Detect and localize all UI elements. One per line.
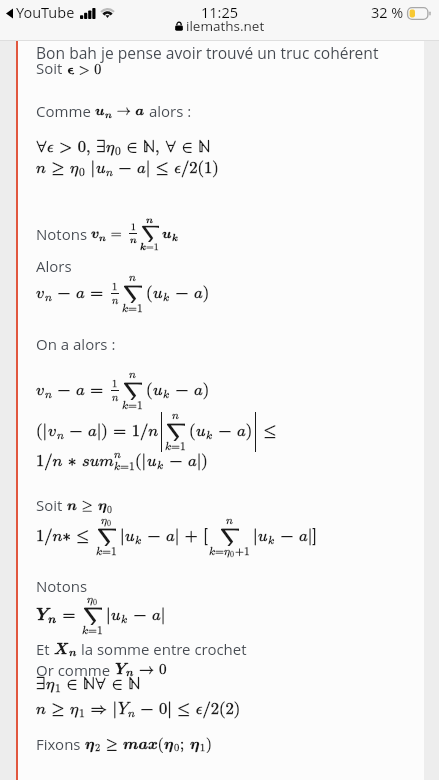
staticText: ∑: [166, 422, 185, 441]
staticText: 𝑛: [172, 410, 179, 422]
staticText: 𝑣: [36, 382, 45, 399]
staticText: =: [57, 607, 81, 624]
staticText: 1: [131, 222, 136, 232]
staticText: 𝒏: [130, 235, 137, 245]
staticText: (|: [135, 453, 147, 470]
button[interactable]: Back to YouTube: [6, 3, 115, 23]
staticText: ∑: [83, 606, 102, 625]
button[interactable]: ilemaths.net: [175, 17, 265, 35]
staticText: alors :: [145, 101, 192, 121]
staticText: 𝑘=1: [122, 303, 143, 315]
staticText: 1/𝑛 ∗: [36, 453, 82, 470]
staticText: 𝒌: [172, 233, 178, 243]
staticText: 𝑢: [111, 607, 121, 624]
staticText: On a alors :: [36, 334, 116, 354]
staticText: 0: [174, 743, 180, 754]
staticText: 11:25: [201, 3, 239, 23]
staticText: |: [85, 160, 96, 177]
staticText: 𝑣: [48, 423, 57, 440]
staticText: Notons: [36, 576, 88, 596]
staticText: 𝑛: [45, 292, 52, 304]
staticText: 𝜂: [101, 515, 107, 527]
staticText: Alors: [36, 256, 72, 276]
staticText: 𝜂: [87, 594, 93, 606]
staticText: 2: [95, 743, 101, 754]
staticText: 𝑛 ≥: [36, 160, 70, 177]
staticText: 𝜼: [164, 737, 174, 752]
staticText: 𝑛: [106, 167, 113, 179]
staticText: 𝑘=1: [82, 625, 103, 637]
staticText: 𝑢: [258, 528, 268, 545]
staticText: 32 %: [371, 3, 404, 23]
staticText: 𝑘: [157, 460, 164, 472]
staticText: ∑: [141, 225, 159, 242]
staticText: 𝒏: [126, 668, 134, 679]
staticText: 1: [112, 378, 118, 389]
staticText: − 𝑎 =: [52, 285, 109, 302]
staticText: 𝑛: [45, 389, 52, 401]
staticText: 𝑘: [163, 292, 170, 304]
staticText: 𝑛: [57, 430, 64, 442]
staticText: Soit: [36, 495, 67, 515]
staticText: =: [106, 227, 127, 241]
staticText: ≤: [258, 423, 277, 440]
staticText: |: [253, 528, 258, 545]
staticText: 𝑢: [153, 382, 163, 399]
staticText: 𝜼: [98, 499, 107, 513]
staticText: ;: [180, 737, 190, 752]
staticText: 𝑢: [147, 453, 157, 470]
staticText: 0: [93, 599, 98, 607]
staticText: 𝑛 ≥: [36, 701, 70, 718]
staticText: − 𝑎| + [: [142, 528, 208, 545]
staticText: 𝑢: [125, 528, 135, 545]
staticText: − 𝑎 =: [52, 382, 109, 399]
staticText: 1: [112, 281, 118, 292]
staticText: 0: [107, 520, 112, 528]
staticText: 𝑿: [54, 642, 69, 657]
staticText: 𝑘: [135, 535, 142, 547]
staticText: 𝑛: [112, 392, 119, 403]
staticText: 𝑘=1: [96, 546, 117, 558]
staticText: Comme: [36, 101, 95, 121]
staticText: 𝑠𝑢𝑚: [82, 453, 114, 470]
staticText: 𝜂: [224, 546, 230, 558]
staticText: 𝜼: [190, 737, 200, 752]
staticText: ∑: [220, 527, 239, 546]
staticText: 𝑘=1: [114, 461, 135, 473]
staticText: 𝒏: [48, 614, 57, 626]
staticText: 𝑛: [226, 515, 233, 527]
staticText: ilemaths.net: [186, 17, 265, 35]
staticText: 0: [79, 167, 85, 179]
staticText: 𝜂: [46, 676, 55, 693]
staticText: 𝑘: [163, 389, 170, 401]
staticText: 𝑢: [196, 423, 206, 440]
staticText: 𝒎𝒂𝒙(: [123, 737, 164, 752]
staticText: Or comme: [36, 660, 115, 680]
staticText: ⇒ |: [85, 701, 118, 718]
staticText: − 𝑎): [170, 382, 210, 399]
staticText: 𝒏: [69, 648, 77, 659]
staticText: 𝒏: [105, 110, 112, 120]
staticText: YouTube: [16, 3, 75, 23]
staticText: 𝒗: [91, 227, 99, 241]
staticText: 𝑘: [268, 535, 275, 547]
staticText: 𝒏 ≥: [67, 499, 98, 513]
staticText: (|: [36, 423, 48, 440]
staticText: (: [146, 382, 153, 399]
staticText: 1/𝑛∗ ≤: [36, 528, 95, 545]
staticText: |: [120, 528, 125, 545]
staticText: − 𝑎): [213, 423, 253, 440]
staticText: 𝒏: [99, 233, 106, 243]
staticText: 𝑛: [129, 369, 136, 381]
staticText: 𝑛: [112, 295, 119, 306]
staticText: 𝒀: [36, 607, 48, 624]
staticText: Notons: [36, 224, 91, 244]
staticText: |: [106, 607, 111, 624]
staticText: − 𝑎|: [128, 607, 166, 624]
staticText: 𝜂: [70, 701, 79, 718]
staticText: ≥: [101, 737, 123, 752]
staticText: ): [206, 737, 212, 752]
staticText: 𝑛: [114, 449, 121, 461]
staticText: Fixons: [36, 734, 85, 754]
staticText: ∃: [36, 676, 46, 693]
